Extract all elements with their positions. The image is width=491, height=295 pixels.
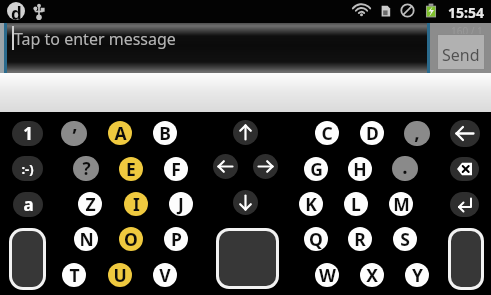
staticText: P	[171, 227, 182, 251]
button[interactable]: W	[315, 263, 339, 287]
button[interactable]: ?	[73, 156, 99, 181]
button[interactable]: A	[108, 121, 132, 145]
button[interactable]: T	[62, 263, 86, 287]
staticText: 160 / 1	[451, 24, 483, 38]
button[interactable]: E	[119, 157, 143, 181]
button[interactable]: Left	[213, 154, 238, 179]
button[interactable]: N	[74, 227, 98, 251]
button[interactable]: Shift	[12, 231, 43, 287]
staticText: L	[351, 192, 361, 216]
staticText: G	[310, 157, 323, 181]
button[interactable]: U	[108, 263, 132, 287]
staticText: J	[178, 192, 184, 216]
staticText: E	[126, 157, 136, 181]
button[interactable]: Symbols	[451, 231, 481, 287]
staticText: K	[305, 192, 317, 216]
button[interactable]: Right	[253, 154, 278, 179]
button[interactable]: Z	[78, 192, 102, 216]
button[interactable]: Y	[405, 263, 429, 287]
button[interactable]: Q	[304, 227, 328, 251]
button[interactable]: R	[348, 227, 372, 251]
button[interactable]: S	[393, 227, 417, 251]
button[interactable]: a	[13, 192, 43, 217]
staticText: H	[353, 157, 367, 181]
staticText: R	[354, 227, 366, 251]
staticText: 1	[23, 122, 33, 145]
staticText: a	[23, 193, 34, 216]
staticText: A	[114, 121, 127, 145]
button[interactable]: 1	[12, 121, 43, 146]
staticText: Send	[442, 44, 480, 66]
staticText: O	[124, 227, 138, 251]
staticText: V	[159, 263, 171, 287]
button[interactable]: ’	[61, 121, 87, 146]
staticText: B	[159, 121, 171, 145]
button[interactable]: X	[360, 263, 384, 287]
button[interactable]: H	[348, 157, 372, 181]
button[interactable]: :-)	[12, 156, 43, 181]
staticText: Y	[412, 263, 423, 287]
staticText: W	[319, 263, 336, 287]
staticText: M	[393, 192, 410, 216]
button[interactable]: L	[344, 192, 368, 216]
button[interactable]: J	[169, 192, 193, 216]
button[interactable]: P	[164, 227, 188, 251]
button[interactable]: .	[392, 156, 418, 181]
staticText: ’	[72, 123, 77, 146]
button[interactable]: Tap to enter message	[14, 28, 176, 50]
staticText: ,	[414, 121, 420, 144]
button[interactable]: Down	[233, 190, 258, 215]
button[interactable]: D	[360, 121, 384, 145]
button[interactable]: Backspace	[450, 157, 479, 181]
button[interactable]: F	[164, 157, 188, 181]
staticText: T	[69, 263, 80, 287]
staticText: X	[366, 263, 378, 287]
button[interactable]: Up	[233, 120, 258, 145]
button[interactable]: Space	[219, 231, 276, 286]
button[interactable]: B	[153, 121, 177, 145]
staticText: C	[321, 121, 333, 145]
button[interactable]: ,	[404, 121, 430, 146]
button[interactable]: C	[315, 121, 339, 145]
staticText: 15:54	[448, 3, 484, 22]
staticText: D	[366, 121, 379, 145]
button[interactable]: M	[389, 192, 413, 216]
button[interactable]: G	[304, 157, 328, 181]
staticText: Q	[309, 227, 323, 251]
staticText: .	[402, 156, 408, 179]
staticText: U	[113, 263, 127, 287]
staticText: F	[171, 157, 181, 181]
button[interactable]: K	[299, 192, 323, 216]
button[interactable]: O	[119, 227, 143, 251]
staticText: :-)	[21, 160, 34, 178]
staticText: ?	[82, 157, 91, 180]
staticText: d	[11, 2, 22, 20]
staticText: I	[133, 192, 140, 216]
button[interactable]: Debug	[7, 2, 25, 20]
button[interactable]: I	[124, 192, 148, 216]
staticText: Z	[85, 192, 96, 216]
staticText: N	[79, 227, 94, 251]
button[interactable]: Back	[450, 120, 480, 147]
button[interactable]: V	[153, 263, 177, 287]
staticText: S	[400, 227, 410, 251]
button[interactable]: Enter	[450, 192, 479, 217]
button[interactable]: Send	[438, 35, 484, 69]
